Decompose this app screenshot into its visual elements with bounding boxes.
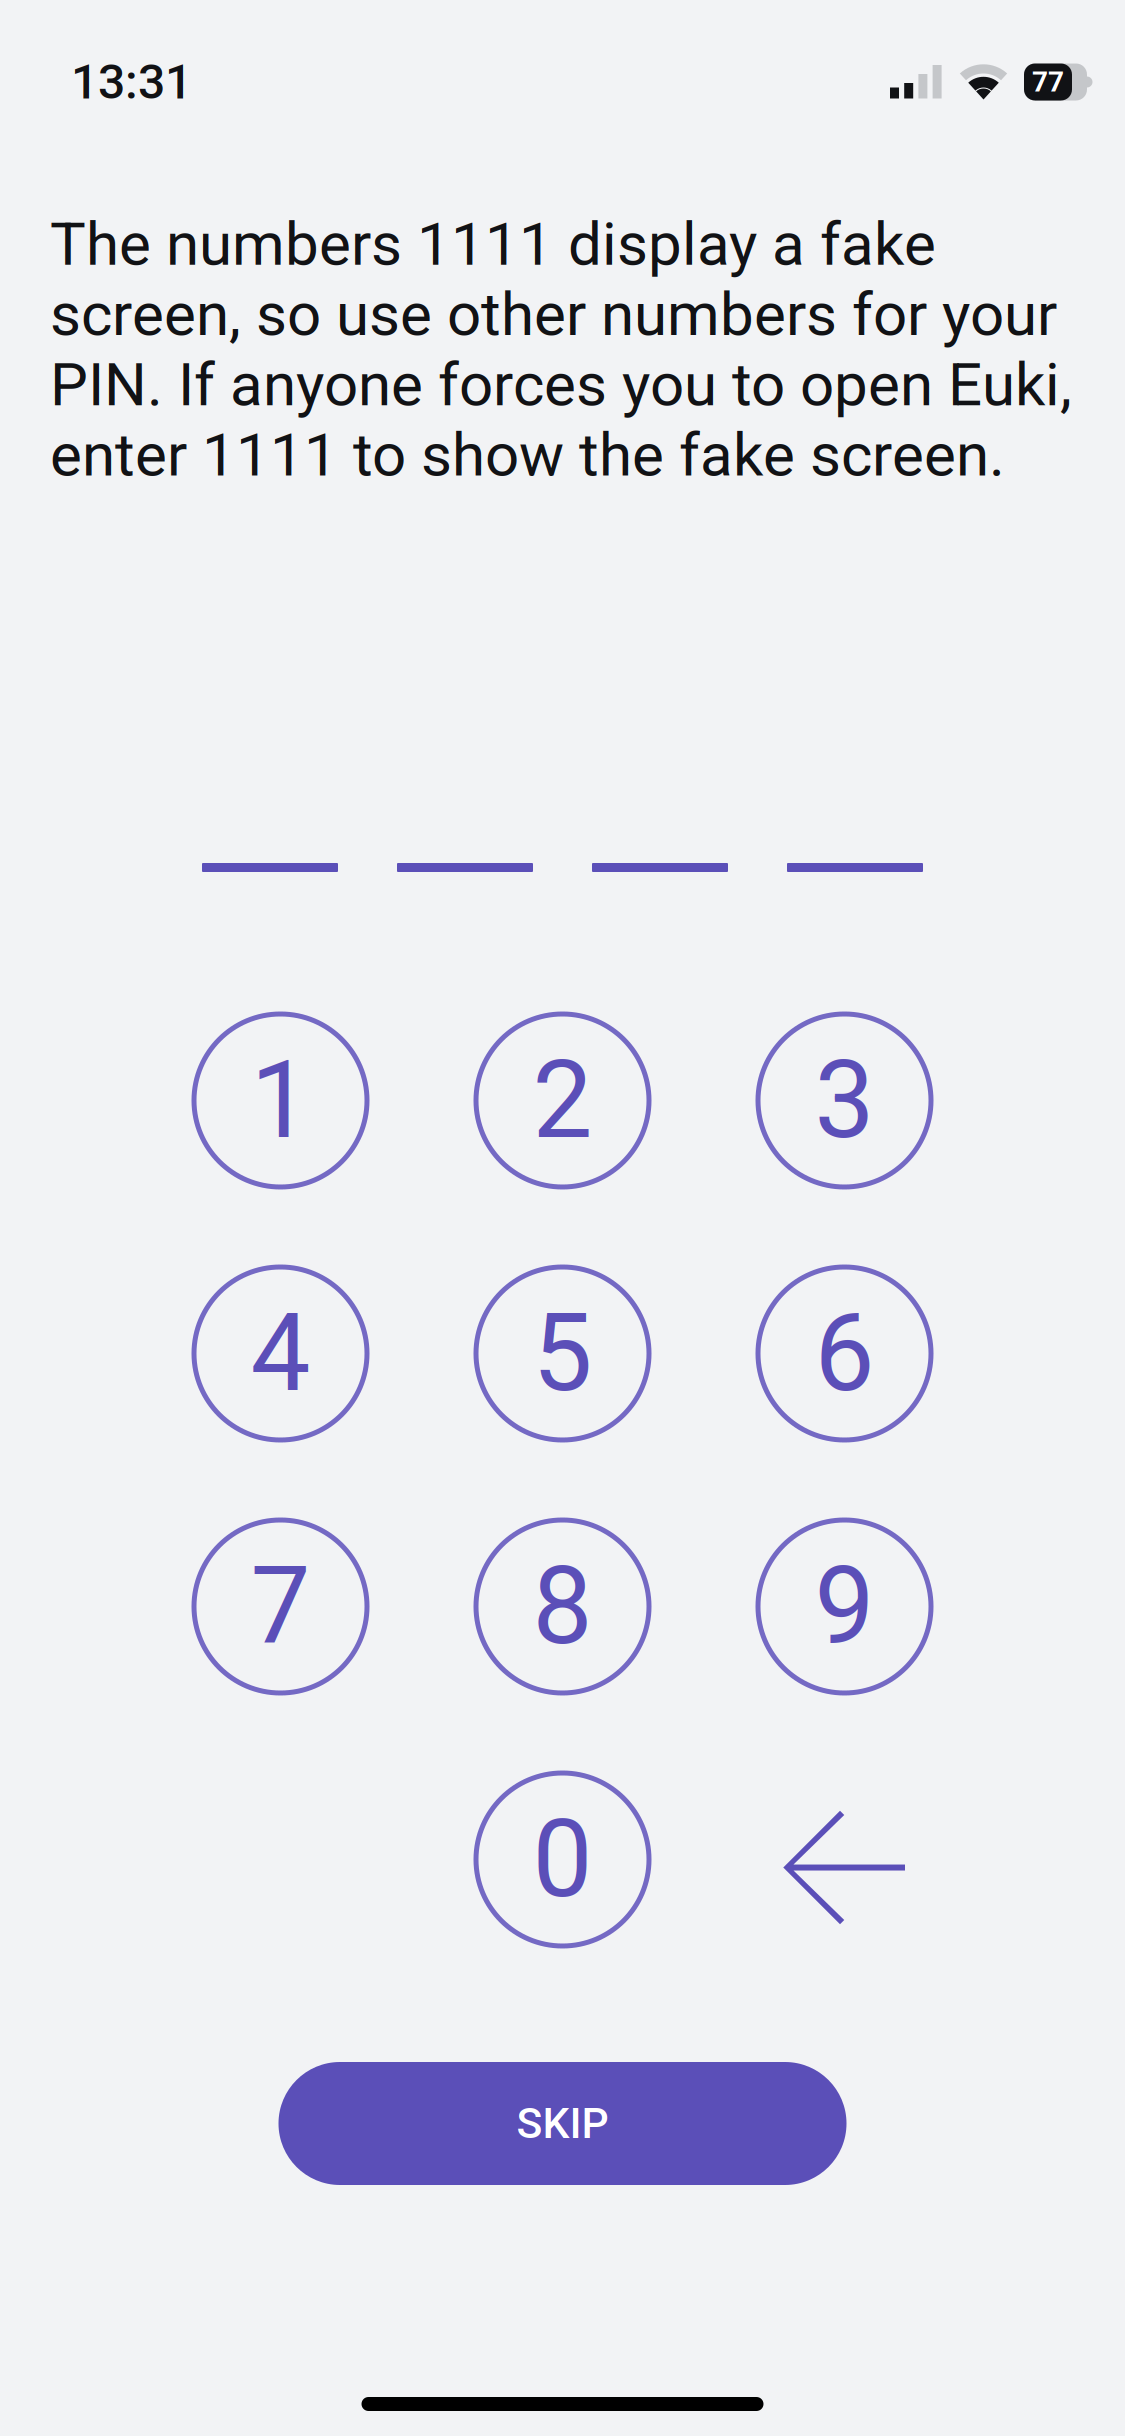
staticText: 8 [532, 1544, 592, 1669]
button[interactable]: 8 [476, 1520, 649, 1693]
staticText: 6 [814, 1291, 874, 1416]
staticText: 5 [532, 1291, 592, 1416]
button[interactable]: 7 [194, 1520, 367, 1693]
staticText: 7 [250, 1544, 310, 1669]
button[interactable]: 9 [758, 1520, 931, 1693]
button[interactable]: 6 [758, 1267, 931, 1440]
staticText: 0 [532, 1797, 592, 1922]
staticText: 3 [814, 1038, 874, 1163]
staticText: 77 [1032, 66, 1064, 98]
button[interactable]: SKIP [278, 2062, 846, 2185]
button[interactable]: 1 [194, 1014, 367, 1187]
staticText: 9 [814, 1544, 874, 1669]
staticText: The numbers 1111 display a fake screen, … [50, 209, 1072, 490]
button[interactable]: 4 [194, 1267, 367, 1440]
staticText: SKIP [516, 2098, 608, 2148]
button[interactable]: 0 [476, 1773, 649, 1946]
button[interactable]: 5 [476, 1267, 649, 1440]
button[interactable]: Delete [758, 1773, 931, 1946]
staticText: 4 [250, 1291, 310, 1416]
staticText: 13:31 [71, 54, 192, 110]
staticText: 1 [250, 1038, 310, 1163]
button[interactable]: 2 [476, 1014, 649, 1187]
staticText: 2 [532, 1038, 592, 1163]
button[interactable]: 3 [758, 1014, 931, 1187]
